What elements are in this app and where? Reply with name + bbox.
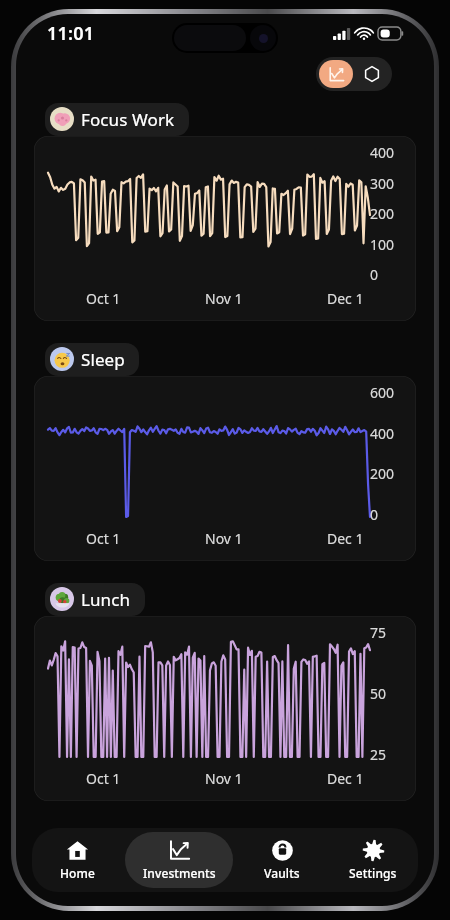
staticText: Oct 1 (86, 529, 121, 548)
button[interactable]: 400 (34, 136, 416, 321)
staticText: 200 (370, 204, 404, 223)
staticText: 100 (370, 235, 404, 254)
staticText: Sleep (81, 348, 125, 371)
staticText: Dec 1 (327, 769, 364, 788)
staticText: 0 (370, 265, 404, 284)
button[interactable]: 75 (34, 616, 416, 801)
staticText: 400 (370, 143, 404, 162)
button[interactable]: Vaults (239, 832, 324, 888)
staticText: Nov 1 (205, 769, 243, 788)
staticText: Settings (349, 865, 397, 881)
staticText: 75 (370, 623, 404, 642)
button[interactable]: Blocks view (355, 60, 389, 88)
button[interactable]: Settings (330, 832, 415, 888)
staticText: Vaults (264, 865, 300, 881)
staticText: 11:01 (47, 21, 95, 46)
staticText: 200 (370, 464, 404, 483)
staticText: Home (60, 865, 95, 881)
staticText: 600 (370, 383, 404, 402)
button[interactable]: 600 (34, 376, 416, 561)
staticText: Nov 1 (205, 289, 243, 308)
staticText: 50 (370, 684, 404, 703)
staticText: 25 (370, 745, 404, 764)
staticText: Dec 1 (327, 529, 364, 548)
button[interactable]: Focus Work (45, 103, 189, 136)
staticText: Investments (143, 865, 216, 881)
staticText: 300 (370, 174, 404, 193)
staticText: Lunch (81, 588, 131, 611)
staticText: Focus Work (81, 108, 175, 131)
button[interactable]: Sleep (45, 343, 139, 376)
staticText: 0 (370, 505, 404, 524)
button[interactable]: Investments (125, 832, 233, 888)
button[interactable]: Charts view (319, 60, 353, 88)
staticText: Dec 1 (327, 289, 364, 308)
button[interactable]: Home (35, 832, 119, 888)
staticText: Nov 1 (205, 529, 243, 548)
staticText: Oct 1 (86, 289, 121, 308)
button[interactable]: Lunch (45, 583, 145, 616)
staticText: Oct 1 (86, 769, 121, 788)
staticText: 400 (370, 424, 404, 443)
